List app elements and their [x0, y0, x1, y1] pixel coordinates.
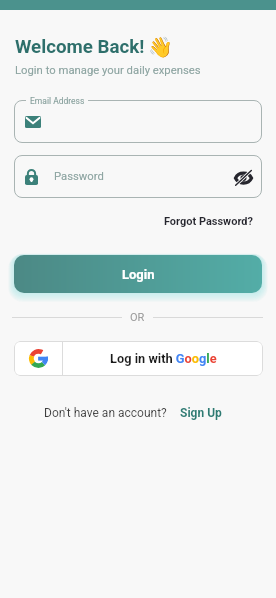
staticText: Password [54, 170, 104, 183]
staticText: Log in with Google [110, 351, 217, 366]
button[interactable]: Sign Up [180, 406, 222, 420]
button[interactable]: Show password [233, 167, 253, 187]
button[interactable]: Forgot Password? [14, 215, 253, 228]
staticText: Don't have an account? [44, 406, 167, 420]
staticText: Login to manage your daily expenses [15, 64, 201, 77]
button[interactable] [14, 100, 262, 143]
staticText: Login [122, 267, 155, 282]
button[interactable]: Log in with Google [14, 341, 263, 376]
staticText: OR [130, 311, 145, 324]
staticText: Welcome Back! [15, 36, 145, 58]
button[interactable]: Password [14, 155, 262, 198]
staticText: Email Address [30, 96, 85, 106]
button[interactable]: Login [14, 255, 262, 293]
staticText: 👋 [148, 35, 173, 58]
